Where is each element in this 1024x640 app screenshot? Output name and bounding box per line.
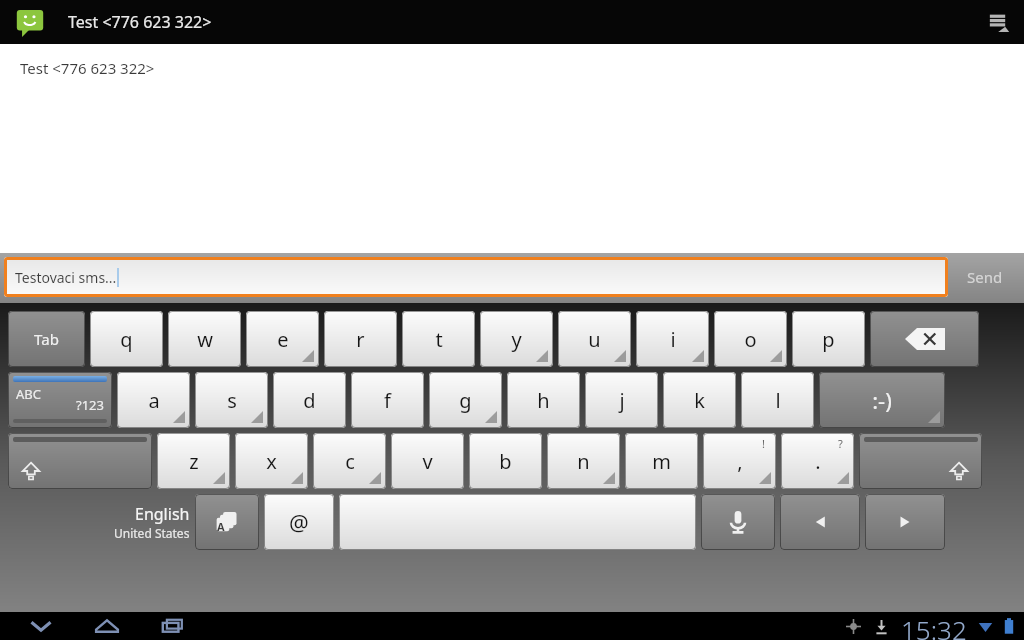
staticText: .	[815, 448, 821, 475]
button[interactable]: Space	[339, 494, 696, 550]
staticText: n	[577, 448, 590, 475]
staticText: Send	[967, 267, 1003, 287]
staticText: ?	[838, 436, 843, 451]
button[interactable]: d	[273, 372, 346, 428]
button[interactable]: Cursor left	[780, 494, 860, 550]
button[interactable]: k	[663, 372, 736, 428]
staticText: o	[744, 326, 757, 353]
staticText: l	[775, 387, 781, 414]
button[interactable]: Voice input	[701, 494, 775, 550]
staticText: ,	[737, 448, 743, 475]
button[interactable]: r	[324, 311, 397, 367]
staticText: z	[189, 448, 199, 475]
staticText: Test <776 623 322>	[68, 11, 212, 33]
staticText: x	[266, 448, 277, 475]
staticText: j	[619, 387, 625, 414]
button[interactable]: u	[558, 311, 631, 367]
button[interactable]: p	[792, 311, 865, 367]
button[interactable]: a	[117, 372, 190, 428]
button[interactable]: c	[313, 433, 386, 489]
staticText: ?123	[76, 396, 104, 414]
button[interactable]: v	[391, 433, 464, 489]
staticText: m	[652, 448, 671, 475]
button[interactable]: Shift	[8, 433, 152, 489]
button[interactable]: b	[469, 433, 542, 489]
button[interactable]: Home	[78, 612, 136, 640]
button[interactable]: z	[157, 433, 230, 489]
button[interactable]: Shift	[859, 433, 982, 489]
staticText: @	[289, 507, 309, 537]
staticText: ABC	[16, 385, 41, 403]
button[interactable]: q	[90, 311, 163, 367]
staticText: e	[277, 326, 289, 353]
staticText: w	[197, 326, 213, 353]
button[interactable]: Backspace	[870, 311, 979, 367]
button[interactable]: n	[547, 433, 620, 489]
staticText: s	[227, 387, 237, 414]
staticText: c	[345, 448, 355, 475]
button[interactable]: :-)	[819, 372, 945, 428]
button[interactable]: e	[246, 311, 319, 367]
button[interactable]: Send	[948, 257, 1022, 297]
button[interactable]: s	[195, 372, 268, 428]
staticText: q	[120, 326, 133, 353]
button[interactable]: l	[741, 372, 814, 428]
button[interactable]: f	[351, 372, 424, 428]
staticText: United States	[114, 525, 190, 541]
staticText: 15:32	[901, 612, 967, 640]
staticText: t	[435, 326, 443, 353]
button[interactable]: m	[625, 433, 698, 489]
button[interactable]: Symbols keyboard	[8, 372, 112, 428]
button[interactable]: Cursor right	[865, 494, 945, 550]
button[interactable]: ,	[703, 433, 776, 489]
button[interactable]: y	[480, 311, 553, 367]
staticText: !	[762, 436, 765, 451]
staticText: p	[822, 326, 835, 353]
button[interactable]: Messaging	[15, 7, 45, 37]
staticText: b	[499, 448, 512, 475]
staticText: r	[356, 326, 365, 353]
button[interactable]: Tab	[8, 311, 85, 367]
staticText: h	[537, 387, 550, 414]
staticText: Test <776 623 322>	[20, 58, 155, 78]
staticText: u	[588, 326, 601, 353]
staticText: g	[459, 387, 472, 414]
button[interactable]: j	[585, 372, 658, 428]
button[interactable]: g	[429, 372, 502, 428]
staticText: v	[422, 448, 433, 475]
button[interactable]: More options	[972, 0, 1024, 44]
button[interactable]: Testovaci sms...	[4, 257, 948, 297]
staticText: y	[511, 326, 522, 353]
staticText: i	[670, 326, 676, 353]
button[interactable]: .	[781, 433, 854, 489]
staticText: Tab	[34, 329, 59, 349]
button[interactable]: w	[168, 311, 241, 367]
button[interactable]: Change input language	[195, 494, 259, 550]
staticText: k	[694, 387, 705, 414]
button[interactable]: i	[636, 311, 709, 367]
button[interactable]: x	[235, 433, 308, 489]
staticText: d	[303, 387, 316, 414]
button[interactable]: t	[402, 311, 475, 367]
button[interactable]: @	[264, 494, 334, 550]
button[interactable]: Recent apps	[144, 612, 202, 640]
staticText: Testovaci sms...	[15, 268, 117, 287]
button[interactable]: o	[714, 311, 787, 367]
staticText: A	[217, 519, 225, 534]
staticText: a	[148, 387, 160, 414]
staticText: f	[384, 387, 391, 414]
button[interactable]: Hide keyboard	[12, 612, 70, 640]
staticText: English	[135, 503, 190, 525]
button[interactable]: h	[507, 372, 580, 428]
staticText: :-)	[872, 385, 892, 415]
